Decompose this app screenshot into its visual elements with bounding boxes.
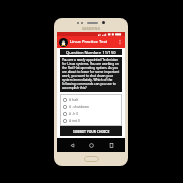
staticText: Linux Practice Test [70,39,108,45]
staticText: # halt [69,97,79,102]
button[interactable]: # halt [63,96,122,103]
staticText: # init 0 [69,118,80,123]
button[interactable]: Back [67,140,77,150]
staticText: SAMSUNG [82,26,101,31]
staticText: # -h 0 [69,111,79,116]
button[interactable]: More options [117,39,123,45]
button[interactable]: # -shutdown [63,103,122,110]
button[interactable]: Recents [106,140,116,150]
staticText: SUBMIT YOUR CHOICE [73,129,110,133]
staticText: Question Number: 11/150 [66,50,116,55]
button[interactable]: Home [86,140,96,150]
staticText: # -shutdown [69,104,90,109]
button[interactable]: # init 0 [63,117,122,124]
button[interactable]: SUBMIT YOUR CHOICE [60,126,122,136]
button[interactable]: # -h 0 [63,110,122,117]
staticText: You are a newly appointed Technician for… [62,58,120,90]
